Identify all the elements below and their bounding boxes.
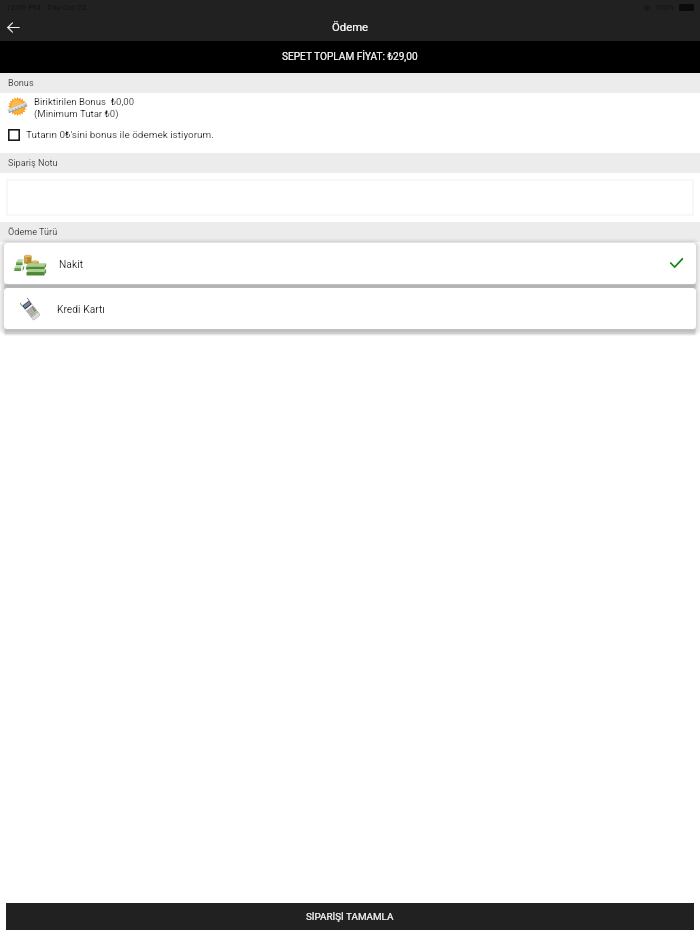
staticText: 100% [655,3,675,12]
button[interactable]: Biriktirilen Bonus ₺0,00 [0,92,700,122]
button[interactable]: Back [0,14,27,41]
staticText: Biriktirilen Bonus ₺0,00 [34,96,135,107]
staticText: Sipariş Notu [8,158,58,169]
staticText: SEPET TOPLAM FİYAT: ₺29,00 [282,51,418,63]
staticText: Thu Oct 22 [47,3,87,12]
button[interactable]: Kredi Kartı [4,288,696,329]
staticText: Ödeme [332,21,369,34]
staticText: Nakit [59,258,84,270]
staticText: 12:00 PM [6,3,41,12]
staticText: (Minimum Tutar ₺0) [34,108,119,119]
staticText: Tutarın 0₺'sini bonus ile ödemek istiyor… [26,129,214,141]
staticText: SİPARİŞİ TAMAMLA [306,911,394,923]
staticText: Kredi Kartı [57,303,105,315]
button[interactable]: Nakit [4,243,696,284]
staticText: Bonus [8,78,34,89]
staticText: Ödeme Türü [8,227,58,238]
button[interactable]: Tutarın 0₺'sini bonus ile ödemek istiyor… [0,124,700,145]
button[interactable]: SİPARİŞİ TAMAMLA [6,903,694,930]
